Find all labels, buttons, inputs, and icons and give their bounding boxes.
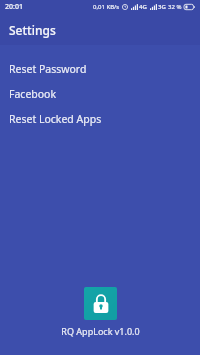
staticText: Facebook xyxy=(9,87,57,101)
staticText: Settings xyxy=(9,22,56,38)
staticText: Reset Password xyxy=(9,62,87,76)
staticText: 4G xyxy=(139,3,147,11)
staticText: 20:01 xyxy=(5,2,23,12)
other: RQ AppLock icon xyxy=(84,287,117,320)
staticText: 3G xyxy=(158,3,166,11)
button[interactable]: Reset Locked Apps xyxy=(0,106,200,131)
staticText: 32 % xyxy=(168,3,182,11)
staticText: RQ AppLock v1.0.0 xyxy=(61,325,140,337)
staticText: 0,01 KB/s xyxy=(93,3,120,11)
staticText: Reset Locked Apps xyxy=(9,112,102,126)
button[interactable]: Reset Password xyxy=(0,56,200,81)
button[interactable]: Facebook xyxy=(0,81,200,106)
